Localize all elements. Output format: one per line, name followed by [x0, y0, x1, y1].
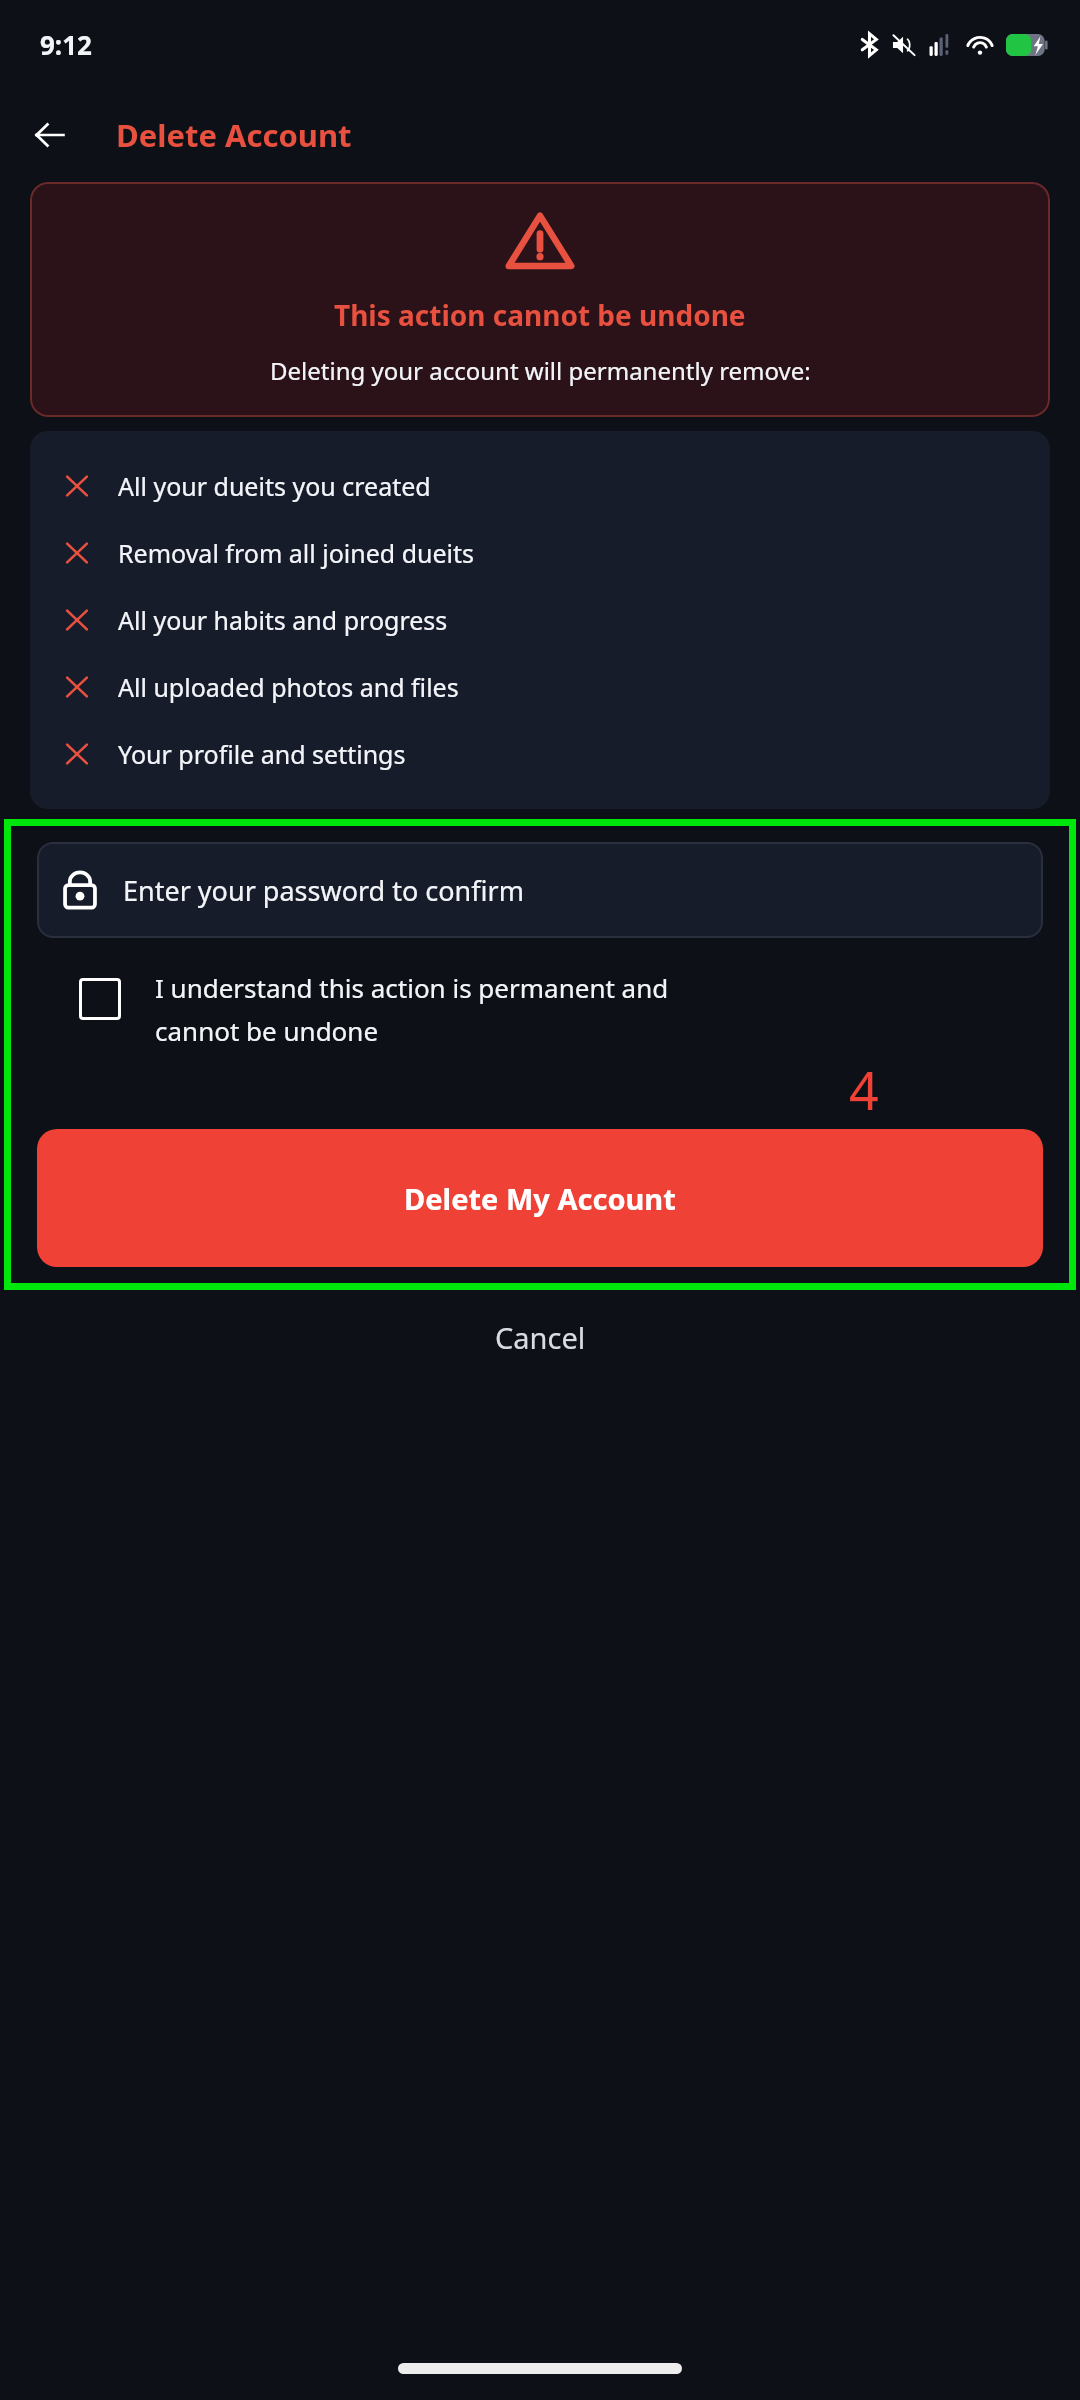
button[interactable]: Cancel — [455, 1306, 626, 1369]
staticText: All your habits and progress — [118, 603, 448, 637]
staticText: All your dueits you created — [118, 469, 431, 503]
staticText: I understand this action is permanent an… — [155, 970, 669, 1005]
button[interactable]: All your dueits you created — [30, 457, 1050, 515]
button[interactable]: All your habits and progress — [30, 591, 1050, 649]
button[interactable]: Back — [20, 105, 80, 165]
staticText: 4 — [849, 1054, 879, 1125]
staticText: All uploaded photos and files — [118, 670, 459, 704]
staticText: 9:12 — [40, 27, 92, 62]
button[interactable]: Enter your password to confirm — [37, 842, 1043, 938]
button[interactable]: Delete My Account — [37, 1129, 1043, 1267]
button[interactable]: Your profile and settings — [30, 725, 1050, 783]
button[interactable]: I understand this action is permanent an… — [11, 970, 1069, 1048]
staticText: Removal from all joined dueits — [118, 536, 475, 570]
staticText: Enter your password to confirm — [123, 872, 524, 909]
button[interactable]: All uploaded photos and files — [30, 658, 1050, 716]
staticText: Deleting your account will permanently r… — [270, 354, 811, 387]
staticText: cannot be undone — [155, 1013, 379, 1048]
staticText: Delete My Account — [404, 1179, 676, 1218]
staticText: This action cannot be undone — [334, 296, 746, 334]
staticText: Cancel — [495, 1318, 586, 1357]
button[interactable]: Removal from all joined dueits — [30, 524, 1050, 582]
staticText: Your profile and settings — [118, 737, 406, 771]
staticText: Delete Account — [116, 114, 352, 156]
